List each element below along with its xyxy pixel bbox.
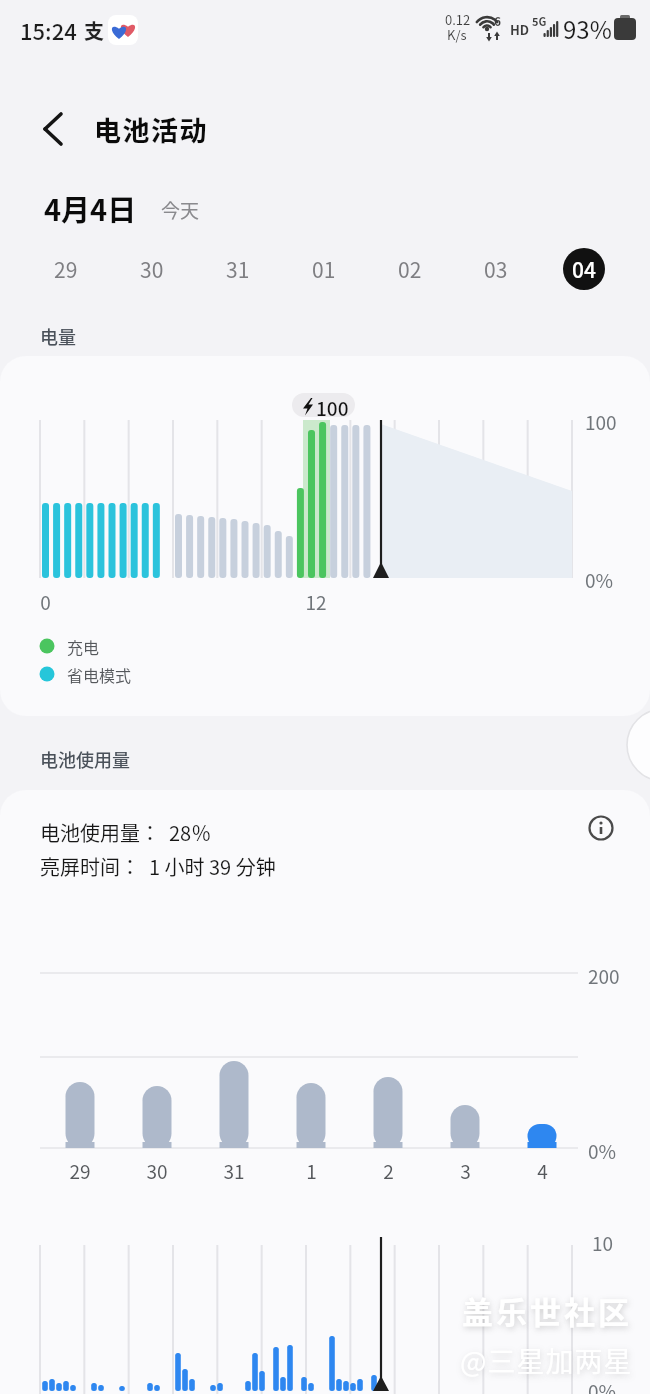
staticText: 12	[305, 588, 327, 616]
staticText: 04	[572, 254, 596, 284]
staticText: 盖乐世社区	[462, 1288, 632, 1333]
staticText: 0.12	[445, 10, 471, 29]
staticText: 3	[460, 1157, 471, 1185]
staticText: 电池使用量： 28％	[40, 818, 212, 847]
staticText: @三星加两星	[460, 1340, 633, 1381]
staticText: 100	[585, 408, 617, 436]
staticText: 100	[316, 394, 349, 422]
staticText: 31	[226, 254, 250, 284]
staticText: 5G	[532, 13, 547, 29]
staticText: 4	[537, 1157, 548, 1185]
button[interactable]: 04	[560, 246, 608, 292]
staticText: 省电模式	[67, 663, 132, 686]
staticText: 电池使用量	[40, 746, 130, 772]
button[interactable]: 30	[128, 246, 176, 292]
staticText: 6	[494, 12, 502, 29]
staticText: 4月4日	[44, 187, 137, 229]
staticText: 29	[54, 254, 78, 284]
staticText: 15:24	[20, 14, 77, 46]
button[interactable]	[626, 710, 650, 780]
staticText: 0%	[585, 566, 614, 594]
button[interactable]: 31	[214, 246, 262, 292]
staticText: 充电	[67, 635, 100, 658]
staticText: HD	[510, 20, 530, 39]
staticText: 30	[140, 254, 164, 284]
staticText: 0	[40, 588, 51, 616]
staticText: 0%	[588, 1377, 617, 1394]
staticText: 2	[383, 1157, 394, 1185]
button[interactable]: 03	[472, 246, 520, 292]
staticText: 01	[312, 254, 336, 284]
staticText: 电量	[40, 323, 76, 349]
staticText: 30	[146, 1157, 168, 1185]
button[interactable]: 29	[42, 246, 90, 292]
staticText: 支	[84, 16, 104, 45]
button[interactable]	[30, 105, 76, 151]
staticText: 亮屏时间： 1 小时 39 分钟	[40, 852, 276, 881]
staticText: 10	[592, 1229, 614, 1257]
button[interactable]: 01	[300, 246, 348, 292]
staticText: 0%	[588, 1137, 617, 1165]
staticText: K/s	[447, 25, 467, 44]
staticText: 1	[306, 1157, 317, 1185]
staticText: 电池活动	[94, 110, 208, 149]
staticText: 03	[484, 254, 508, 284]
staticText: 200	[588, 962, 620, 990]
staticText: 93%	[563, 11, 612, 46]
button[interactable]: 02	[386, 246, 434, 292]
staticText: 今天	[161, 196, 200, 224]
button[interactable]	[583, 810, 619, 846]
staticText: 02	[398, 254, 422, 284]
staticText: 31	[223, 1157, 245, 1185]
staticText: 29	[69, 1157, 91, 1185]
